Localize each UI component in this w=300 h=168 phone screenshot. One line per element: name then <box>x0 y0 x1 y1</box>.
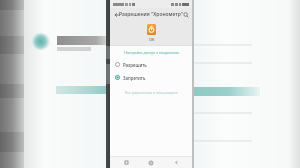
button[interactable]: Back <box>167 157 185 168</box>
button[interactable]: Home <box>142 157 160 168</box>
staticText: ОК <box>149 37 155 42</box>
staticText: Запретить <box>123 75 146 81</box>
button[interactable]: Разрешить <box>110 60 192 69</box>
button[interactable]: Search <box>181 10 190 19</box>
staticText: Все разрешения в этом разделе <box>125 90 178 95</box>
button[interactable]: Back <box>112 10 121 19</box>
staticText: Разрешить <box>123 62 147 68</box>
staticText: Разрешения "Хронометр" <box>119 11 183 18</box>
staticText: Настройте доступ к геоданным <box>124 50 179 55</box>
button[interactable]: Recents <box>117 157 135 168</box>
button[interactable]: Запретить <box>110 73 192 82</box>
